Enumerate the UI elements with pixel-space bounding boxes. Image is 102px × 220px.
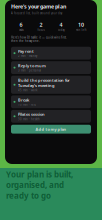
staticText: Pilates session xyxy=(18,112,45,117)
staticText: Add to my plan xyxy=(35,126,66,132)
button[interactable]: Pay rent xyxy=(11,47,91,60)
staticText: Break xyxy=(18,97,29,102)
staticText: 6 xyxy=(19,21,22,28)
button[interactable]: Reply to mum xyxy=(11,61,91,74)
staticText: 10 xyxy=(78,21,84,28)
button[interactable]: Add to my plan xyxy=(11,125,91,134)
staticText: Your plan is built, organised, and ready… xyxy=(6,169,73,201)
staticText: 2 min · money xyxy=(18,54,37,58)
staticText: Reply to mum xyxy=(18,63,46,68)
staticText: Here's your game plan xyxy=(11,3,66,10)
staticText: focus xyxy=(37,28,44,32)
staticText: Build the presentation for Tuesday's mee… xyxy=(18,77,70,88)
staticText: tasks xyxy=(18,28,23,32)
staticText: min left xyxy=(75,28,86,32)
staticText: 45 min · work xyxy=(18,88,37,92)
staticText: 2 xyxy=(39,21,42,28)
staticText: today xyxy=(57,28,64,32)
staticText: A focused list, built around your day xyxy=(11,11,62,15)
button[interactable]: Pilates session xyxy=(11,110,91,123)
staticText: 3 min · personal xyxy=(18,69,41,72)
staticText: 30 min · health xyxy=(18,117,40,121)
button[interactable]: Break xyxy=(11,95,91,108)
staticText: Here's how I'd tackle it — quick wins fi… xyxy=(11,36,67,43)
staticText: 10 min · rest xyxy=(18,103,36,106)
button[interactable]: Build the presentation for Tuesday's mee… xyxy=(11,76,91,94)
staticText: 4 xyxy=(59,21,62,28)
staticText: Pay rent xyxy=(18,48,34,54)
